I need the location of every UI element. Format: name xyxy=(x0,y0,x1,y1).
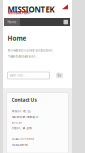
staticText: Please check back soon. xyxy=(7,55,36,58)
button[interactable]: Home xyxy=(4,18,20,26)
staticText: 571-441-1111 Phone xyxy=(11,137,33,141)
staticText: 703-832-8298 Fax xyxy=(11,143,27,146)
button[interactable]: Go xyxy=(56,73,63,78)
staticText: MISSION FIRST xyxy=(8,11,31,15)
staticText: Reston, VA 20190 xyxy=(11,126,31,130)
staticText: Go xyxy=(57,74,61,77)
staticText: Mission Tek, LLC xyxy=(11,109,31,113)
staticText: Home xyxy=(7,34,26,43)
staticText: This website is under construction. xyxy=(7,49,53,52)
staticText: Suite 301 xyxy=(11,121,21,124)
staticText: search here ... xyxy=(9,74,26,77)
staticText: Home xyxy=(7,20,16,24)
staticText: Contact Us xyxy=(11,96,36,103)
staticText: 1640 Michael Faraday Dr xyxy=(11,115,38,119)
staticText: MISSIONTEK xyxy=(7,4,54,15)
button[interactable]: MissionTek home xyxy=(7,4,69,15)
